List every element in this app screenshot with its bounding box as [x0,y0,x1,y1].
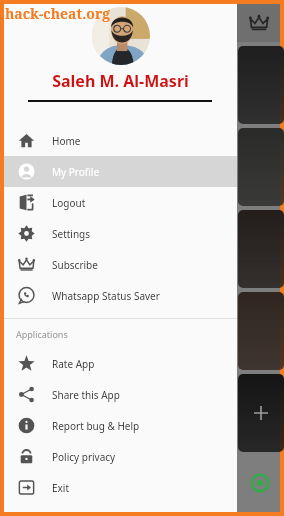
staticText: Home [52,134,81,148]
button[interactable] [238,210,284,288]
staticText: Share this App [52,388,120,402]
button[interactable] [238,292,284,370]
button[interactable]: Share this App [4,379,237,410]
staticText: Saleh M. Al-Masri [52,70,189,92]
staticText: Rate App [52,357,95,371]
button[interactable]: Subscribe [249,13,269,33]
button[interactable]: Logout [4,187,237,218]
staticText: Settings [52,227,91,241]
staticText: hack-cheat.org [5,4,111,23]
staticText: Policy privacy [52,450,116,464]
button[interactable]: Exit [4,472,237,503]
button[interactable]: Settings [4,218,237,249]
staticText: Whatsapp Status Saver [52,289,160,303]
staticText: Logout [52,196,86,210]
button[interactable]: My Profile [4,156,237,187]
button[interactable]: Report bug & Help [4,410,237,441]
button[interactable]: Record [251,474,269,492]
button[interactable] [238,374,284,452]
button[interactable]: Home [4,125,237,156]
staticText: Applications [16,328,68,340]
button[interactable]: Rate App [4,348,237,379]
button[interactable] [238,46,284,124]
button[interactable]: Whatsapp Status Saver [4,280,237,311]
staticText: Exit [52,481,70,495]
staticText: My Profile [52,165,100,179]
button[interactable]: Policy privacy [4,441,237,472]
button[interactable] [238,128,284,206]
staticText: Subscribe [52,258,98,272]
staticText: Report bug & Help [52,419,140,433]
button[interactable]: Subscribe [4,249,237,280]
